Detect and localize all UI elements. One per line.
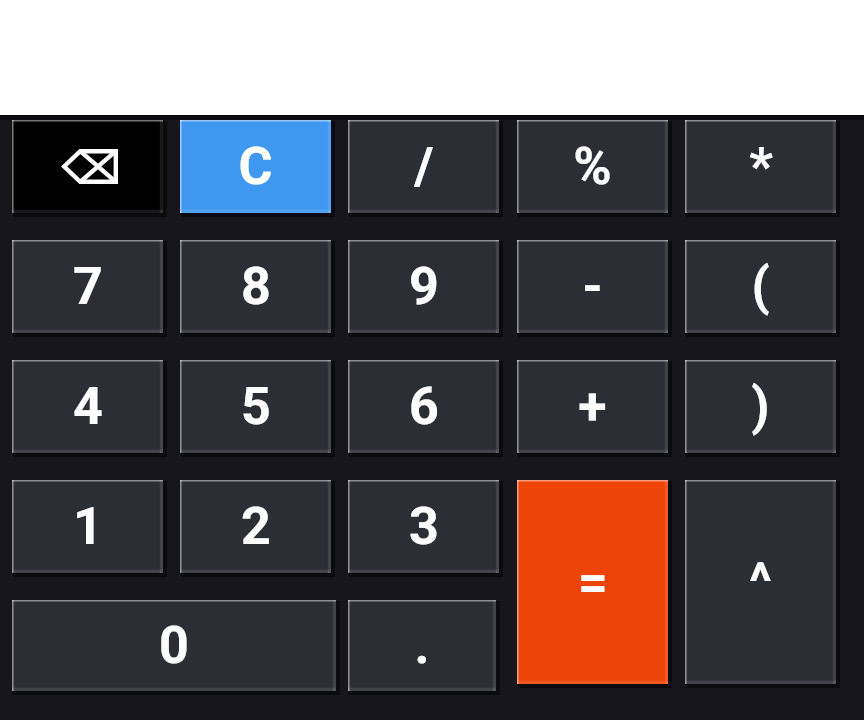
staticText: (: [751, 256, 770, 317]
button[interactable]: 5: [180, 360, 331, 453]
button[interactable]: 1: [12, 480, 163, 573]
staticText: 3: [409, 496, 439, 557]
staticText: 2: [241, 496, 271, 557]
button[interactable]: 3: [348, 480, 499, 573]
staticText: 6: [409, 376, 439, 437]
button[interactable]: Backspace: [12, 120, 163, 213]
staticText: C: [238, 136, 273, 197]
button[interactable]: *: [685, 120, 836, 213]
button[interactable]: 8: [180, 240, 331, 333]
button[interactable]: +: [517, 360, 668, 453]
staticText: %: [573, 136, 612, 197]
button[interactable]: .: [348, 600, 496, 691]
button[interactable]: 2: [180, 480, 331, 573]
staticText: 5: [241, 376, 271, 437]
button[interactable]: 4: [12, 360, 163, 453]
button[interactable]: ^: [685, 480, 836, 684]
staticText: 4: [73, 376, 103, 437]
button[interactable]: -: [517, 240, 668, 333]
staticText: /: [414, 136, 434, 197]
staticText: ): [751, 376, 770, 437]
button[interactable]: ): [685, 360, 836, 453]
staticText: =: [578, 552, 608, 613]
button[interactable]: 6: [348, 360, 499, 453]
staticText: 0: [159, 615, 189, 676]
button[interactable]: 7: [12, 240, 163, 333]
staticText: .: [414, 615, 430, 676]
button[interactable]: 9: [348, 240, 499, 333]
button[interactable]: /: [348, 120, 499, 213]
button[interactable]: C: [180, 120, 331, 213]
staticText: -: [582, 256, 603, 317]
button[interactable]: %: [517, 120, 668, 213]
staticText: 7: [73, 256, 103, 317]
staticText: ^: [749, 552, 772, 613]
button[interactable]: 0: [12, 600, 336, 691]
button[interactable]: =: [517, 480, 668, 684]
staticText: 1: [73, 496, 103, 557]
button[interactable]: (: [685, 240, 836, 333]
staticText: *: [749, 136, 773, 197]
staticText: 8: [241, 256, 271, 317]
staticText: 9: [409, 256, 439, 317]
staticText: +: [578, 376, 607, 437]
